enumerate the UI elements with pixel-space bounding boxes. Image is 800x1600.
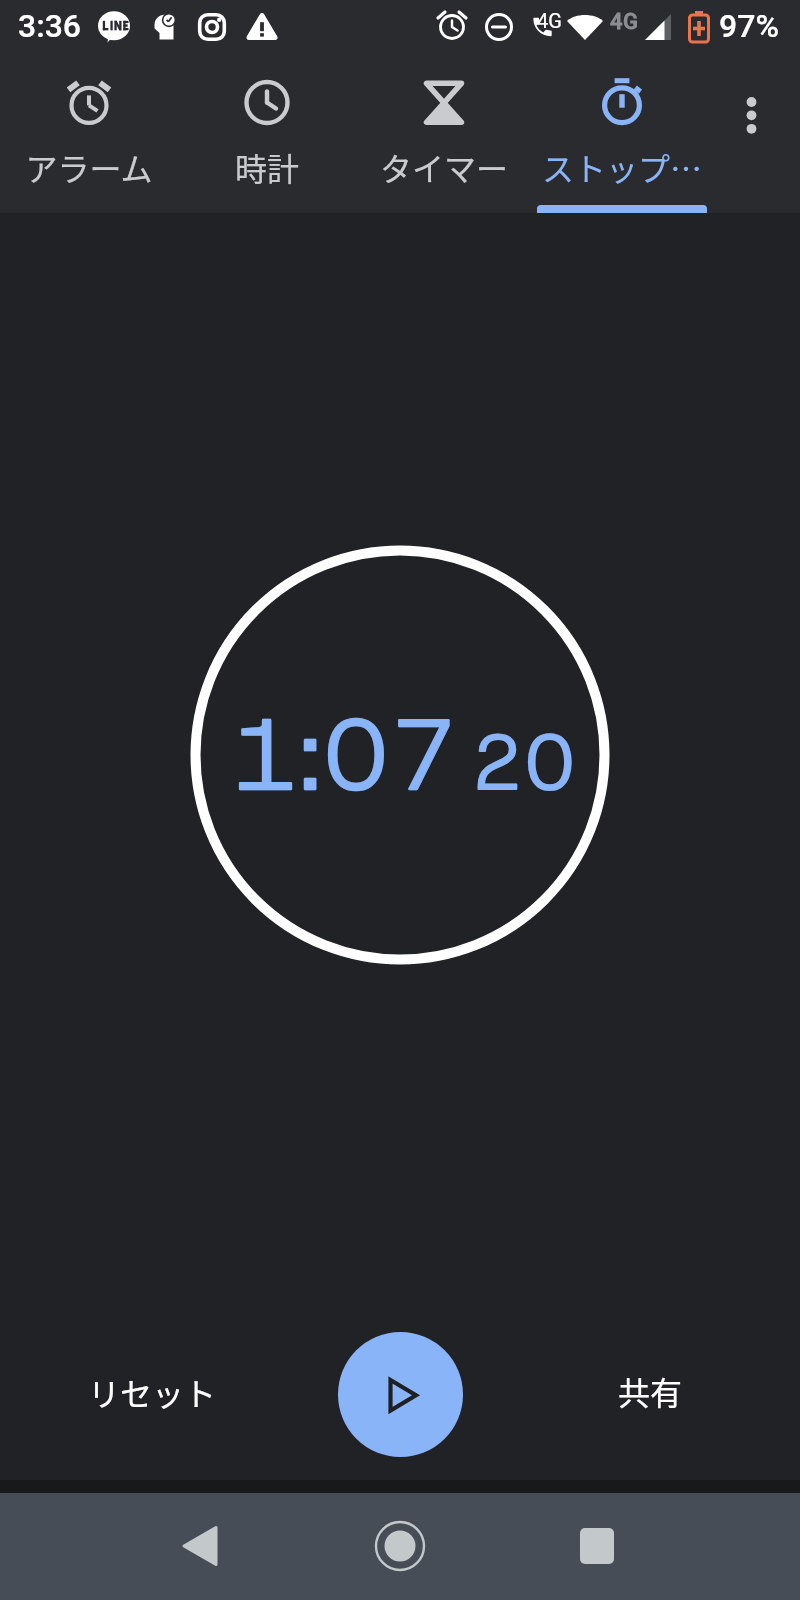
staticText: ストップ… bbox=[533, 144, 711, 190]
button[interactable]: リセット bbox=[52, 1342, 252, 1442]
button[interactable]: ストップ… bbox=[533, 56, 711, 213]
button[interactable]: Back bbox=[140, 1493, 260, 1600]
staticText: リセット bbox=[88, 1369, 217, 1415]
staticText: 1:07 bbox=[232, 689, 458, 821]
staticText: 4G bbox=[610, 9, 639, 35]
staticText: 共有 bbox=[618, 1368, 683, 1414]
staticText: 4G bbox=[537, 9, 562, 32]
button[interactable]: Recent apps bbox=[537, 1493, 657, 1600]
staticText: タイマー bbox=[355, 144, 533, 190]
button[interactable]: Start stopwatch bbox=[338, 1332, 463, 1457]
button[interactable]: 時計 bbox=[178, 56, 356, 213]
staticText: 20 bbox=[472, 711, 578, 813]
staticText: 時計 bbox=[178, 144, 356, 190]
staticText: アラーム bbox=[0, 144, 178, 190]
button[interactable]: Home bbox=[340, 1493, 460, 1600]
button[interactable]: アラーム bbox=[0, 56, 178, 213]
staticText: 20 bbox=[472, 711, 578, 813]
staticText: 3:36 bbox=[18, 7, 82, 45]
button[interactable]: More options bbox=[710, 56, 800, 213]
button[interactable]: タイマー bbox=[355, 56, 533, 213]
staticText: 1:07 bbox=[232, 689, 458, 821]
button[interactable]: 共有 bbox=[550, 1341, 750, 1441]
staticText: 97% bbox=[719, 7, 779, 45]
